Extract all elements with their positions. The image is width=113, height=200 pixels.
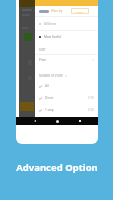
staticText: All Items [44,22,57,26]
staticText: $180 [88,108,94,112]
staticText: filter by [51,9,63,13]
staticText: Most Useful [44,35,61,39]
staticText: $100 [88,96,94,100]
button[interactable]: Advanced Option [16,161,98,174]
button[interactable]: Recents [76,117,84,125]
staticText: SORT [39,48,46,52]
staticText: CLEAR [76,10,84,13]
staticText: Direct [45,96,54,100]
button[interactable]: All Items [39,17,94,30]
staticText: 1 stop [45,108,54,112]
button[interactable]: CLEAR [71,8,89,14]
staticText: Price [39,58,46,62]
staticText: All [45,84,49,88]
button[interactable]: All [39,80,94,92]
button[interactable]: Home [53,117,61,125]
button[interactable]: 1 stop [39,104,94,116]
button[interactable]: Direct [39,92,94,104]
button[interactable]: Back [31,117,39,125]
button[interactable]: Price [39,55,94,64]
button[interactable]: Most Useful [39,31,94,42]
staticText: NUMBER OF STOPS [39,74,63,78]
